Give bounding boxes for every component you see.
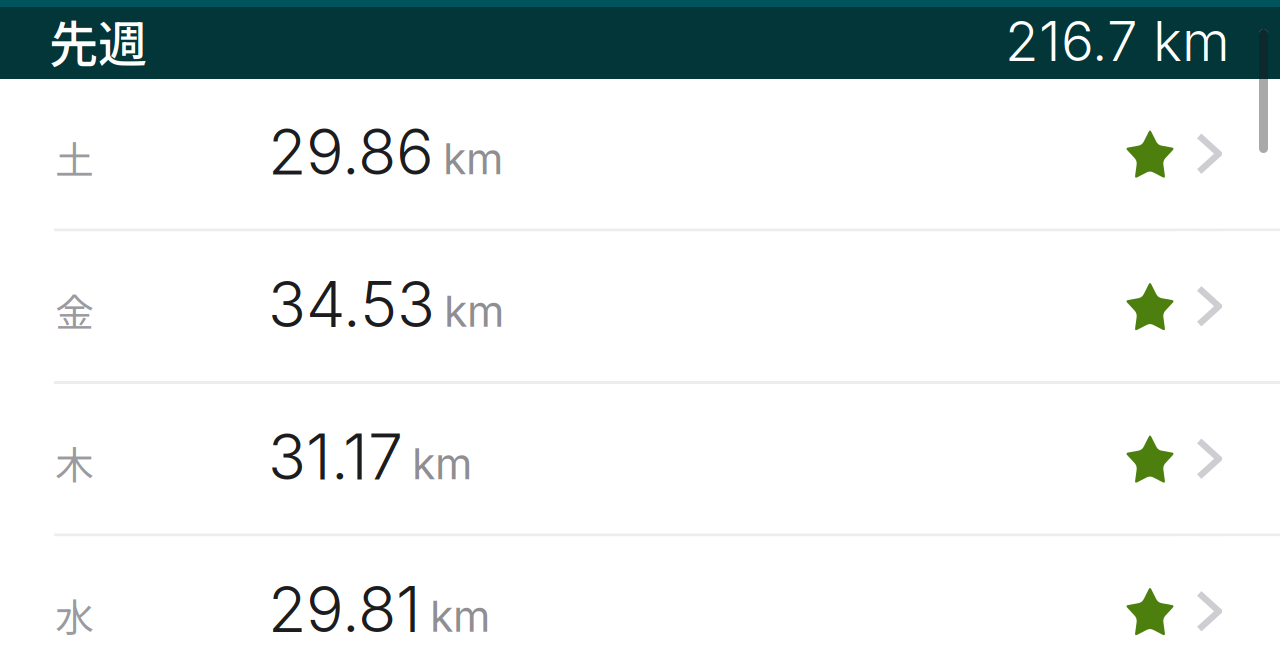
staticText: 水 <box>55 587 94 643</box>
staticText: 木 <box>55 435 94 491</box>
staticText: 29.81 <box>268 571 421 647</box>
staticText: 216.7 km <box>1005 8 1230 74</box>
button[interactable]: 水 <box>0 536 1280 670</box>
button[interactable]: 木 <box>0 384 1280 533</box>
button[interactable]: 金 <box>0 231 1280 381</box>
staticText: 29.86 <box>268 114 434 190</box>
staticText: 金 <box>55 282 94 338</box>
staticText: 31.17 <box>268 419 403 495</box>
staticText: km <box>412 438 472 490</box>
staticText: km <box>430 590 490 642</box>
staticText: 先週 <box>49 5 147 76</box>
staticText: 土 <box>55 130 94 186</box>
button[interactable]: 土 <box>0 79 1280 228</box>
staticText: km <box>444 285 504 337</box>
staticText: km <box>443 133 503 185</box>
staticText: 34.53 <box>268 266 435 342</box>
